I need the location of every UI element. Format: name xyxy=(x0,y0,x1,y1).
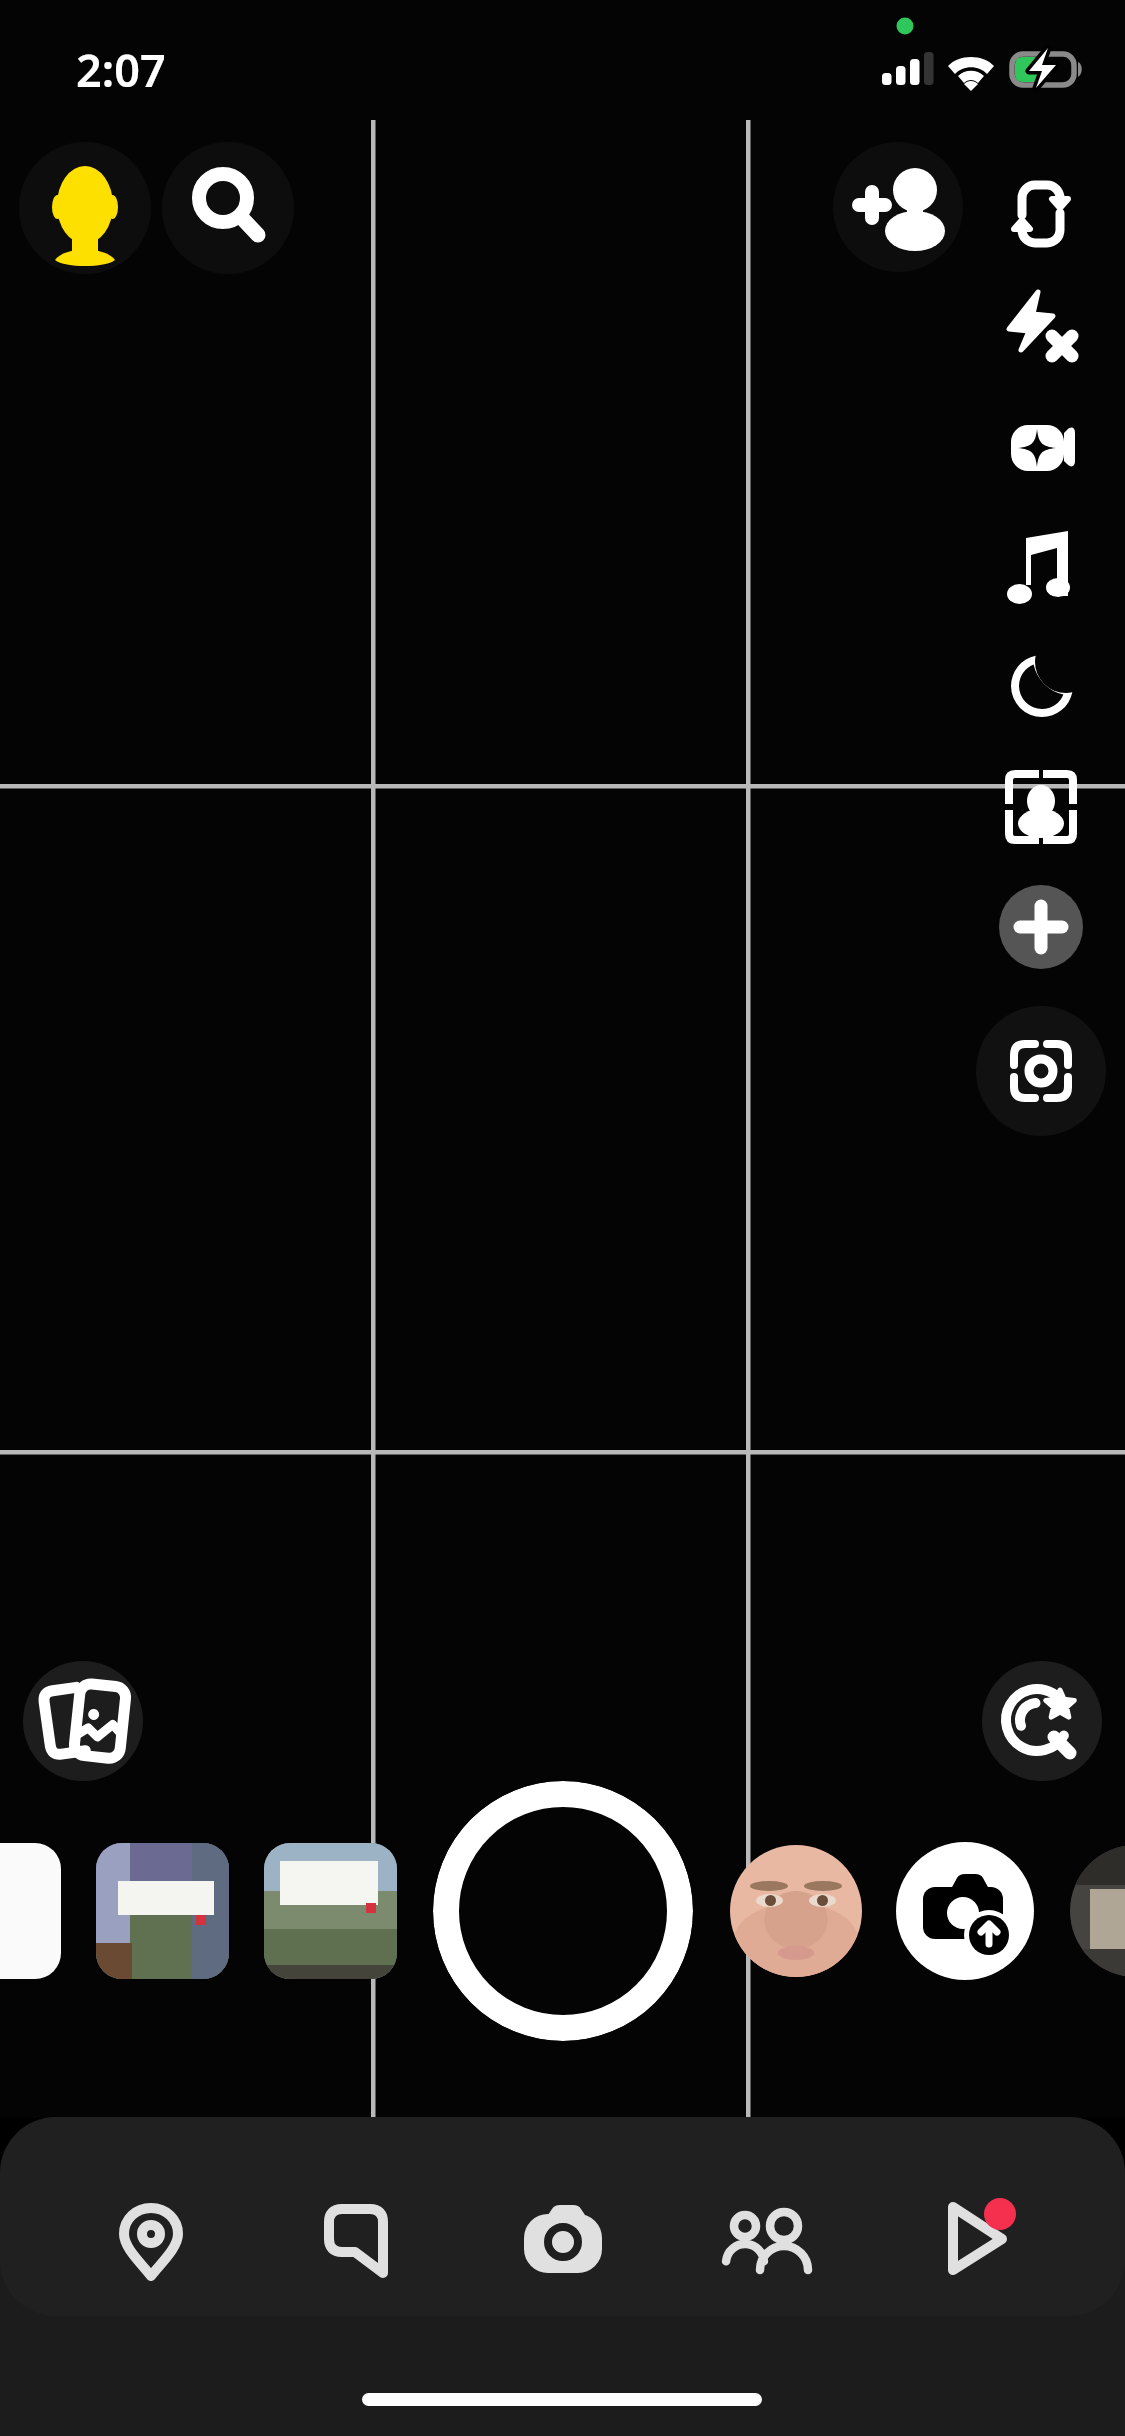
button[interactable]: Chat xyxy=(257,2141,457,2337)
button[interactable]: Video effects xyxy=(978,383,1108,513)
staticText: 2:07 xyxy=(76,39,166,100)
button[interactable]: Memories xyxy=(23,1661,143,1781)
button[interactable]: Spotlight xyxy=(875,2141,1075,2337)
button[interactable]: Search xyxy=(162,142,294,274)
button[interactable]: Story xyxy=(96,1843,229,1979)
button[interactable]: Open camera roll xyxy=(896,1842,1034,1980)
button[interactable]: Capture xyxy=(433,1781,693,2041)
button[interactable]: Add friend xyxy=(833,142,963,272)
button[interactable]: Profile xyxy=(19,142,151,274)
button[interactable]: Portrait mode xyxy=(976,742,1106,872)
button[interactable]: Night mode xyxy=(977,621,1107,751)
button[interactable]: Music xyxy=(973,501,1103,631)
button[interactable]: Story xyxy=(264,1843,397,1979)
button[interactable]: Friends xyxy=(668,2142,868,2338)
button[interactable]: Add lens xyxy=(999,885,1083,969)
button[interactable]: Story xyxy=(1070,1845,1125,1977)
button[interactable]: Camera xyxy=(463,2142,663,2338)
button[interactable]: Flip camera xyxy=(976,149,1106,279)
button[interactable]: Map xyxy=(51,2142,251,2338)
button[interactable]: Flash off xyxy=(975,260,1105,390)
button[interactable]: Explore lenses xyxy=(982,1661,1102,1781)
button[interactable]: Lens xyxy=(730,1845,862,1977)
button[interactable]: Scan xyxy=(976,1006,1106,1136)
button[interactable]: Story xyxy=(0,1843,61,1979)
